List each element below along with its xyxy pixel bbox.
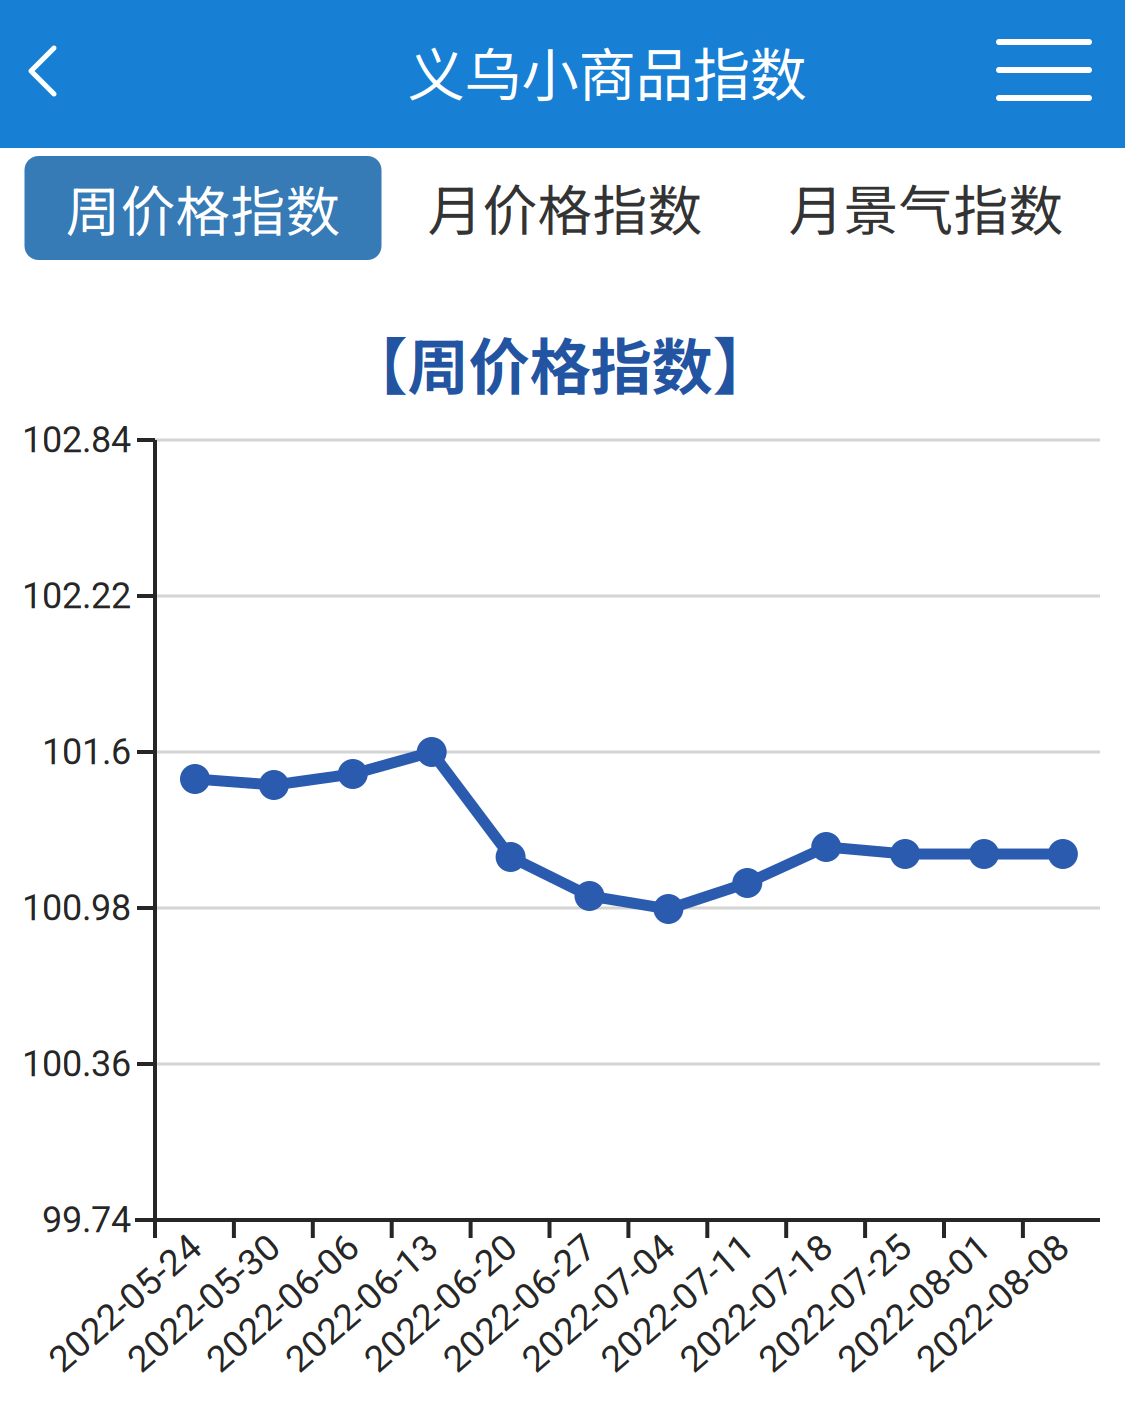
staticText: 月价格指数 — [427, 167, 702, 247]
button[interactable]: 周价格指数 — [24, 156, 381, 260]
staticText: 周价格指数 — [65, 168, 340, 248]
staticText: 2022-06-13 — [268, 1281, 456, 1325]
button[interactable]: 月价格指数 — [400, 155, 730, 259]
staticText: 2022-07-25 — [741, 1281, 929, 1325]
staticText: 102.84 — [22, 419, 131, 461]
staticText: 2022-05-24 — [31, 1281, 219, 1325]
staticText: 102.22 — [22, 575, 131, 617]
staticText: 99.74 — [42, 1199, 131, 1241]
staticText: 2022-08-08 — [899, 1281, 1087, 1325]
button[interactable]: 月景气指数 — [761, 155, 1091, 259]
button[interactable]: Back — [4, 22, 104, 122]
staticText: 2022-07-04 — [504, 1281, 692, 1325]
staticText: 【周价格指数】 — [346, 319, 773, 407]
staticText: 2022-08-01 — [820, 1281, 1008, 1325]
button[interactable]: Menu — [989, 30, 1099, 140]
staticText: 义乌小商品指数 — [407, 29, 806, 112]
staticText: 2022-06-27 — [425, 1281, 613, 1325]
staticText: 月景气指数 — [788, 167, 1063, 247]
staticText: 2022-06-20 — [347, 1281, 535, 1325]
staticText: 2022-07-18 — [662, 1281, 850, 1325]
staticText: 2022-05-30 — [110, 1281, 298, 1325]
staticText: 2022-06-06 — [189, 1281, 377, 1325]
staticText: 101.6 — [42, 731, 131, 773]
staticText: 2022-07-11 — [583, 1281, 771, 1325]
staticText: 100.36 — [22, 1043, 131, 1085]
staticText: 100.98 — [22, 887, 131, 929]
